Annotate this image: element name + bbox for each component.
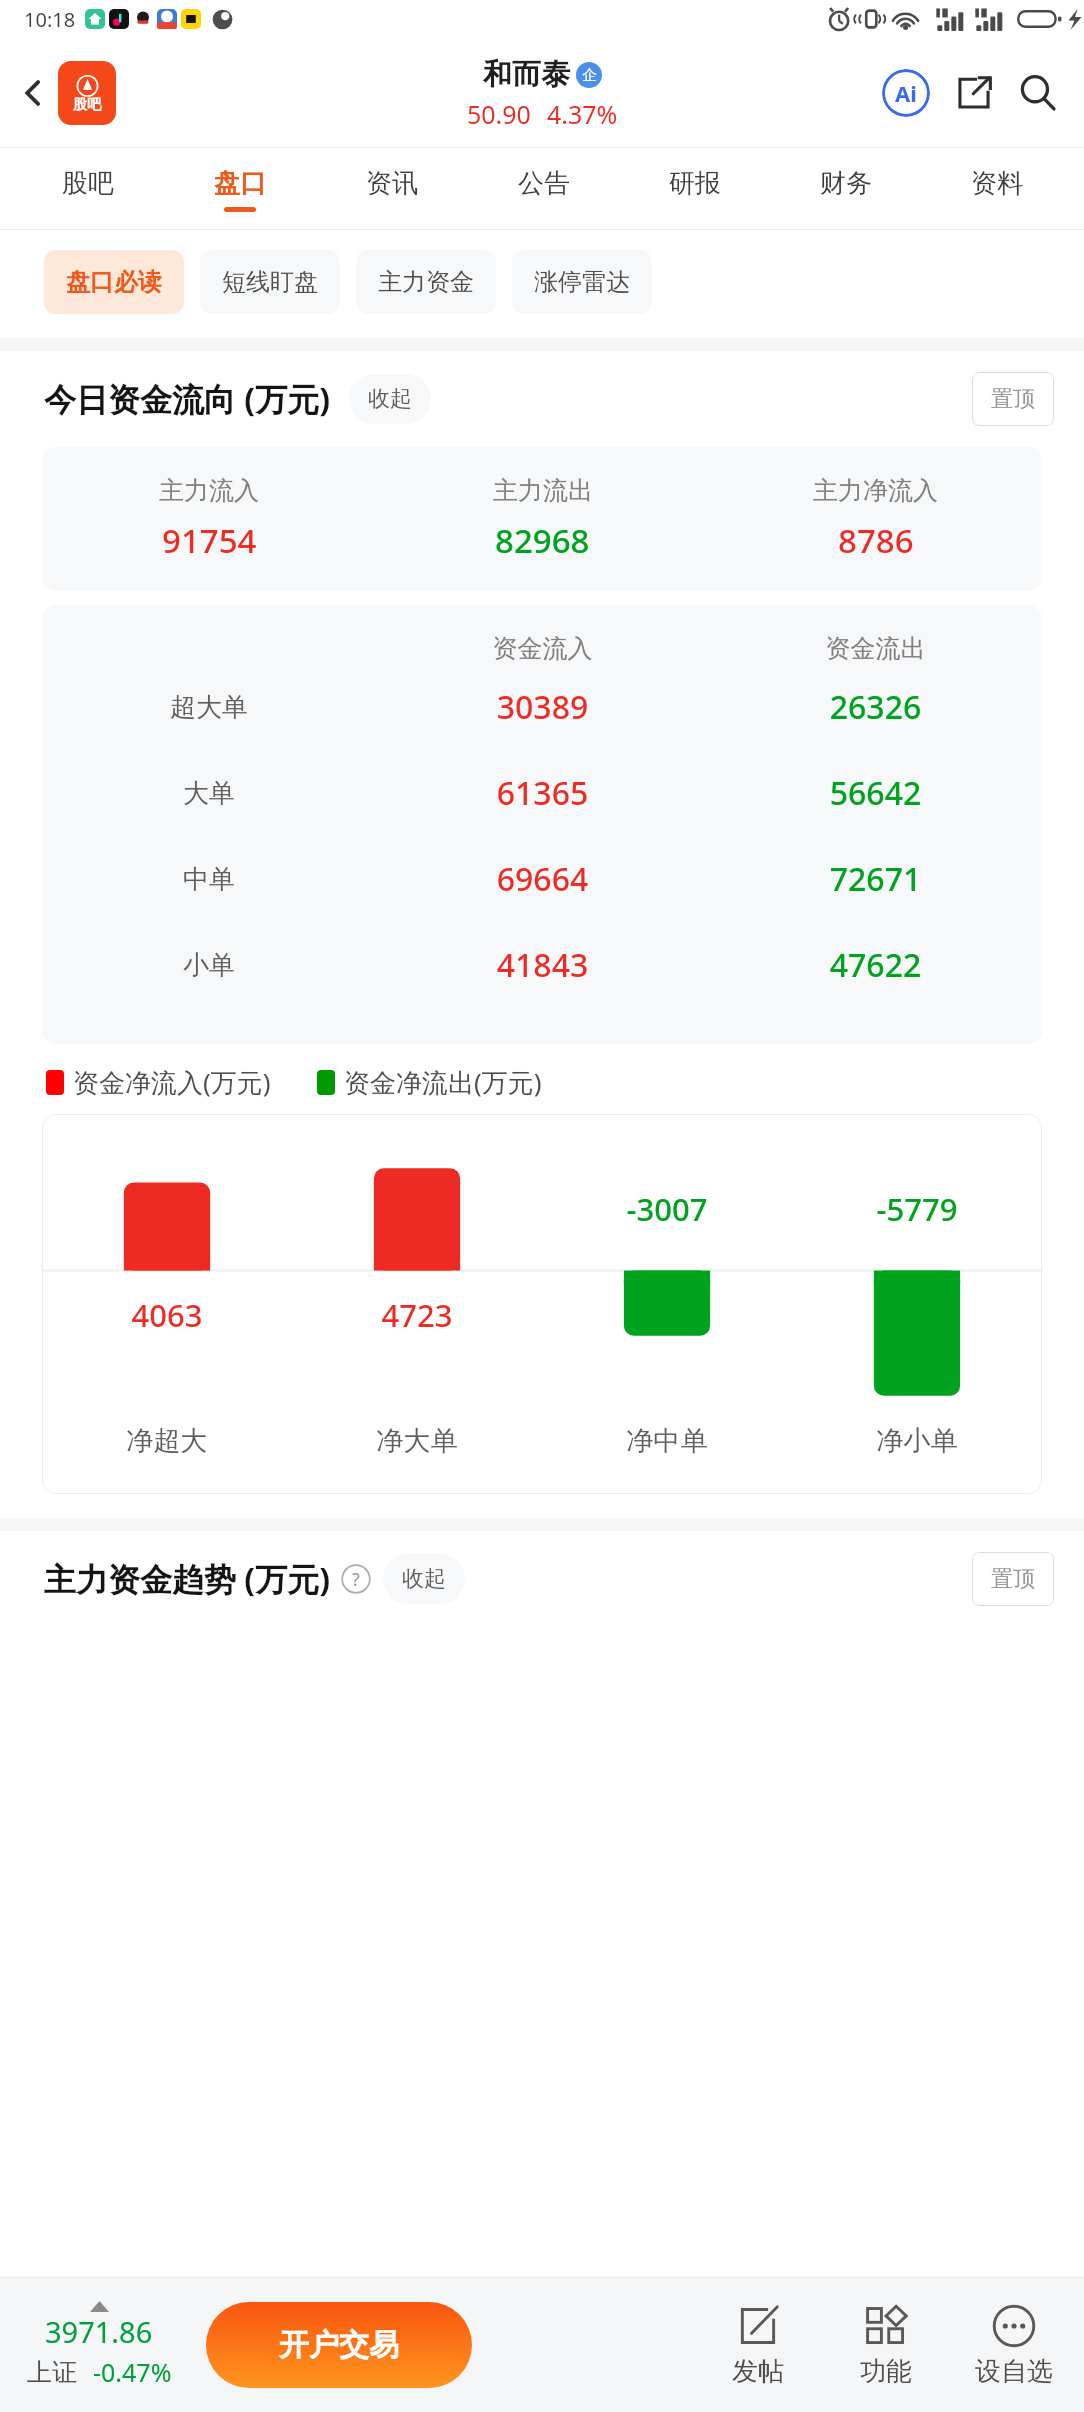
staticText: 30389 [376,685,709,729]
staticText: 大单 [183,777,235,810]
staticText: 主力流出 [493,475,593,506]
button[interactable]: 收起 [349,374,431,424]
button[interactable]: 分享 [946,65,1002,121]
staticText: 置顶 [991,1565,1035,1593]
staticText: 净中单 [542,1424,792,1458]
staticText: 公告 [518,167,570,200]
button[interactable]: 资料 [921,148,1072,230]
staticText: 69664 [376,857,709,901]
staticText: 净超大 [42,1424,292,1458]
staticText: 涨停雷达 [534,267,630,297]
staticText: 设自选 [975,2355,1053,2388]
staticText: 企 [582,66,597,85]
staticText: 今日资金流向 (万元) [44,377,331,421]
button[interactable]: 财务 [770,148,921,230]
staticText: 资金净流入(万元) [73,1064,271,1100]
button[interactable]: 返回 [4,64,62,122]
staticText: 功能 [860,2355,912,2388]
button[interactable]: 3971.86 [0,2301,198,2389]
staticText: 净小单 [792,1424,1042,1458]
staticText: 8786 [838,518,914,563]
staticText: 中单 [183,863,235,896]
staticText: 资讯 [366,167,418,200]
staticText: 股吧 [62,167,114,200]
staticText: Ai [895,78,917,108]
staticText: 研报 [669,167,721,200]
button[interactable]: 发帖 [694,2303,822,2388]
button[interactable]: AI助手 [878,65,934,121]
staticText: 短线盯盘 [222,267,318,297]
staticText: 资金流出 [709,633,1042,664]
staticText: -5779 [792,1188,1042,1230]
staticText: 4723 [292,1294,542,1336]
staticText: 上证 [27,2357,77,2388]
button[interactable]: 研报 [619,148,770,230]
staticText: 资金流入 [376,633,709,664]
staticText: 3971.86 [45,2312,153,2351]
staticText: 91754 [162,518,257,563]
staticText: 主力净流入 [813,475,938,506]
button[interactable]: 股吧 [12,148,164,230]
staticText: 主力资金 [378,267,474,297]
button[interactable]: 盘口必读 [44,250,184,314]
button[interactable]: 置顶 [972,372,1054,426]
staticText: 和而泰 [483,56,570,93]
staticText: 主力流入 [159,475,259,506]
button[interactable]: 说明 [341,1564,371,1594]
staticText: 56642 [709,771,1042,815]
staticText: 盘口 [214,167,266,200]
staticText: 主力资金趋势 (万元) [44,1557,331,1601]
button[interactable]: 设自选 [950,2303,1078,2388]
button[interactable]: 盘口 [164,148,316,230]
staticText: 股吧 [73,96,101,114]
staticText: -0.47% [93,2355,172,2389]
staticText: 小单 [183,949,235,982]
staticText: 收起 [368,385,412,413]
button[interactable]: 开户交易 [206,2302,472,2388]
staticText: 资金净流出(万元) [344,1064,542,1100]
staticText: 4.37% [547,97,618,131]
staticText: 72671 [709,857,1042,901]
button[interactable]: 短线盯盘 [200,250,340,314]
staticText: 超大单 [170,691,248,724]
staticText: ? [352,1567,360,1592]
button[interactable]: 收起 [383,1554,465,1604]
staticText: 82968 [495,518,590,563]
staticText: 净大单 [292,1424,542,1458]
button[interactable]: 资讯 [316,148,468,230]
staticText: 盘口必读 [66,267,162,297]
button[interactable]: 股吧 [58,61,116,125]
staticText: 41843 [376,943,709,987]
staticText: 4063 [42,1294,292,1336]
staticText: 10:18 [24,6,76,33]
button[interactable]: 公告 [468,148,619,230]
button[interactable]: 搜索 [1010,65,1066,121]
staticText: 47622 [709,943,1042,987]
staticText: 发帖 [732,2355,784,2388]
staticText: 开户交易 [279,2326,399,2364]
staticText: 财务 [820,167,872,200]
button[interactable]: 置顶 [972,1552,1054,1606]
staticText: 置顶 [991,385,1035,413]
staticText: 61365 [376,771,709,815]
button[interactable]: 涨停雷达 [512,250,652,314]
staticText: 26326 [709,685,1042,729]
button[interactable]: 主力资金 [356,250,496,314]
button[interactable]: 功能 [822,2303,950,2388]
staticText: 收起 [402,1565,446,1593]
staticText: 资料 [971,167,1023,200]
staticText: 50.90 [467,97,531,131]
staticText: -3007 [542,1188,792,1230]
